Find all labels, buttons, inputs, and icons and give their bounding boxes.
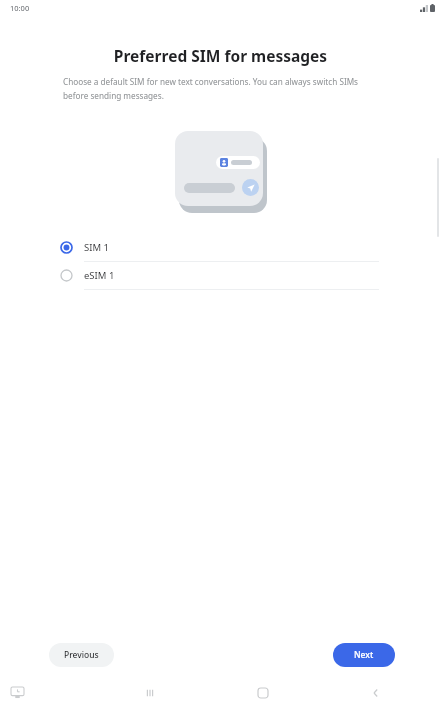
- button[interactable]: eSIM 1: [0, 262, 441, 290]
- staticText: Next: [354, 649, 374, 661]
- button[interactable]: Back: [363, 680, 389, 706]
- button[interactable]: Previous: [49, 643, 114, 667]
- staticText: SIM 1: [84, 241, 109, 254]
- button[interactable]: Next: [333, 643, 395, 667]
- button[interactable]: Recents: [137, 680, 163, 706]
- staticText: Preferred SIM for messages: [0, 45, 441, 66]
- staticText: Choose a default SIM for new text conver…: [63, 76, 365, 101]
- button[interactable]: SIM 1: [0, 234, 441, 262]
- staticText: eSIM 1: [84, 269, 115, 282]
- staticText: Previous: [64, 649, 99, 661]
- staticText: 10:00: [10, 3, 30, 13]
- button[interactable]: Screenshot: [7, 683, 27, 703]
- button[interactable]: Home: [250, 680, 276, 706]
